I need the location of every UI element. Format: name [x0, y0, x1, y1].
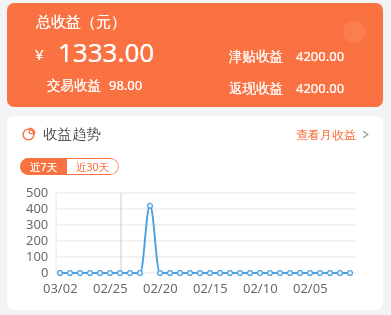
staticText: 300: [26, 215, 49, 231]
staticText: 02/20: [143, 279, 178, 297]
staticText: 查看月收益: [296, 127, 356, 142]
staticText: 近30天: [76, 160, 110, 174]
staticText: 近7天: [30, 160, 58, 174]
staticText: 98.00: [109, 76, 143, 94]
button[interactable]: 查看月收益: [296, 125, 370, 143]
staticText: 4200.00: [296, 47, 345, 65]
staticText: 总收益（元）: [36, 13, 126, 32]
staticText: 400: [26, 199, 49, 215]
staticText: 4200.00: [296, 79, 345, 97]
button[interactable]: 近7天: [20, 158, 67, 175]
staticText: 100: [26, 247, 49, 263]
button[interactable]: 近30天: [67, 158, 119, 175]
staticText: 02/10: [243, 279, 278, 297]
staticText: ¥: [35, 44, 44, 64]
staticText: 返现收益: [229, 80, 283, 97]
staticText: 津贴收益: [229, 48, 283, 65]
staticText: 03/02: [43, 279, 78, 297]
staticText: 500: [26, 183, 49, 199]
button[interactable]: 总收益（元）: [7, 3, 383, 107]
staticText: 0: [41, 263, 49, 279]
staticText: 1333.00: [58, 34, 155, 69]
staticText: 收益趋势: [43, 125, 101, 143]
staticText: 02/05: [293, 279, 328, 297]
staticText: 02/15: [193, 279, 228, 297]
staticText: 交易收益: [47, 77, 101, 94]
staticText: 02/25: [93, 279, 128, 297]
staticText: 200: [26, 231, 49, 247]
